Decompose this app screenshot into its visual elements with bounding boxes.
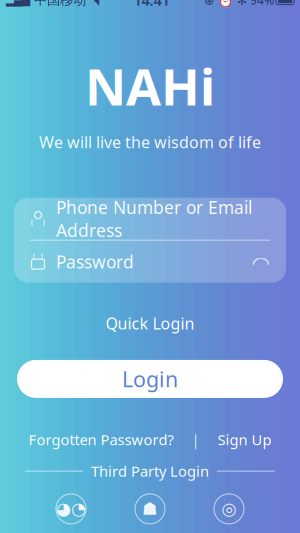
staticText: Sign Up (217, 430, 271, 449)
button[interactable]: Login (17, 360, 283, 398)
staticText: We will live the wisdom of life (39, 131, 261, 153)
staticText: | (191, 430, 199, 449)
button[interactable]: Sign in with WeChat (49, 489, 93, 529)
staticText: Forgotten Password? (28, 430, 173, 449)
staticText: Third Party Login (91, 461, 209, 481)
staticText: 14:41 (133, 0, 169, 10)
staticText: ⊕ ⏰ ✻ 94% (204, 0, 274, 8)
staticText: Phone Number or Email Address (56, 196, 252, 242)
button[interactable]: Quick Login (91, 309, 208, 338)
staticText: Quick Login (105, 313, 194, 334)
staticText: ◕◔ (56, 499, 86, 519)
button[interactable]: Sign in with Weibo (207, 489, 251, 529)
staticText: ☗ (142, 499, 158, 519)
staticText: NAHi (85, 52, 215, 119)
button[interactable]: Phone Number or Email Address (14, 198, 286, 240)
button[interactable]: Sign Up (217, 426, 271, 453)
staticText: Login (122, 365, 178, 393)
staticText: ▂▄▆ (6, 0, 30, 6)
button[interactable]: Sign in with QQ (128, 489, 172, 529)
staticText: ◥ (90, 0, 99, 7)
staticText: ◎ (221, 499, 236, 519)
staticText: Password (56, 250, 134, 273)
staticText: 中国移动 (30, 0, 90, 8)
button[interactable]: Forgotten Password? (28, 426, 173, 453)
button[interactable]: Password (14, 241, 286, 283)
